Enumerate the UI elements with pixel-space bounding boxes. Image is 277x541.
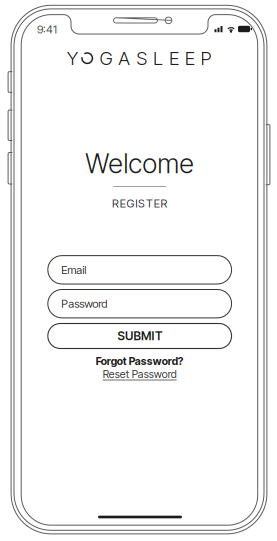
staticText: Reset Password: [103, 367, 177, 380]
button[interactable]: SUBMIT: [48, 323, 232, 348]
staticText: Password: [61, 297, 107, 310]
staticText: GASLEEP: [99, 47, 212, 69]
button[interactable]: Password: [48, 289, 232, 318]
staticText: SUBMIT: [117, 329, 162, 343]
staticText: REGISTER: [112, 197, 167, 210]
staticText: Welcome: [85, 147, 194, 180]
button[interactable]: Forgot Password?: [85, 354, 195, 367]
button[interactable]: Email: [48, 256, 232, 284]
staticText: 9:41: [37, 23, 57, 36]
staticText: Email: [61, 263, 86, 277]
button[interactable]: REGISTER: [100, 194, 180, 212]
staticText: Forgot Password?: [96, 354, 184, 367]
button[interactable]: Reset Password: [90, 368, 190, 380]
staticText: Y: [67, 47, 79, 69]
